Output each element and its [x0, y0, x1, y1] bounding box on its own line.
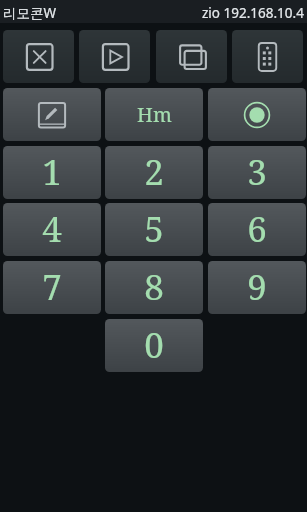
button[interactable]: Edit: [3, 88, 101, 141]
staticText: 7: [42, 263, 62, 311]
button[interactable]: 6: [208, 203, 306, 256]
button[interactable]: 2: [105, 146, 203, 199]
staticText: 6: [247, 205, 267, 253]
button[interactable]: Play: [79, 30, 150, 83]
button[interactable]: Close: [3, 30, 74, 83]
button[interactable]: 4: [3, 203, 101, 256]
staticText: Hm: [137, 101, 172, 128]
button[interactable]: 3: [208, 146, 306, 199]
button[interactable]: 5: [105, 203, 203, 256]
button[interactable]: 0: [105, 319, 203, 372]
button[interactable]: 9: [208, 261, 306, 314]
staticText: 8: [144, 263, 164, 311]
staticText: 3: [247, 148, 267, 196]
button[interactable]: Power: [208, 88, 306, 141]
button[interactable]: 1: [3, 146, 101, 199]
staticText: 2: [144, 148, 164, 196]
staticText: 5: [144, 205, 164, 253]
staticText: zio 192.168.10.4: [202, 4, 304, 22]
button[interactable]: Switch window: [156, 30, 227, 83]
button[interactable]: 8: [105, 261, 203, 314]
button[interactable]: Remote keypad: [232, 30, 303, 83]
staticText: 1: [42, 148, 62, 196]
button[interactable]: 7: [3, 261, 101, 314]
staticText: 4: [42, 205, 62, 253]
staticText: 9: [247, 263, 267, 311]
staticText: 0: [144, 321, 164, 369]
staticText: 리모콘W: [3, 4, 57, 22]
button[interactable]: Hm: [105, 88, 203, 141]
